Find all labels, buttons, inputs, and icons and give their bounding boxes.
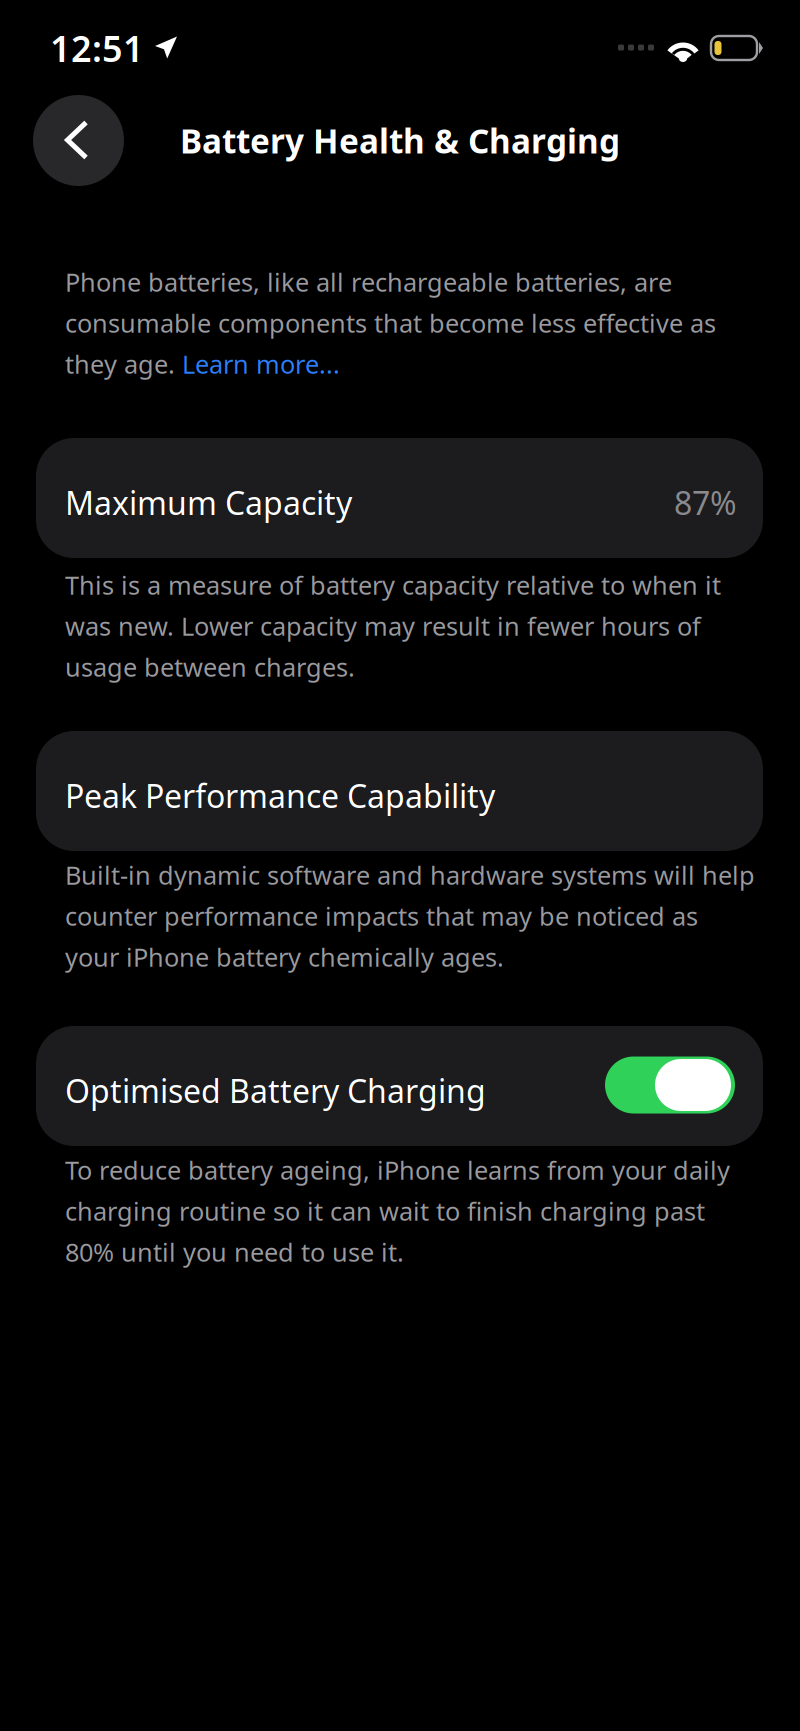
staticText: Peak Performance Capability	[65, 774, 495, 817]
staticText: Phone batteries, like all rechargeable b…	[65, 265, 672, 299]
staticText: Learn more...	[182, 347, 340, 381]
button[interactable]: Back	[33, 95, 124, 186]
staticText: 80% until you need to use it.	[65, 1235, 404, 1269]
staticText: To reduce battery ageing, iPhone learns …	[65, 1153, 730, 1187]
staticText: usage between charges.	[65, 650, 355, 684]
staticText: 87%	[674, 481, 737, 524]
staticText: Maximum Capacity	[65, 481, 352, 524]
button[interactable]: Learn more...	[182, 347, 340, 381]
staticText: Battery Health & Charging	[180, 118, 620, 163]
staticText: 12:51	[50, 24, 144, 72]
staticText: was new. Lower capacity may result in fe…	[65, 609, 701, 643]
staticText: This is a measure of battery capacity re…	[65, 568, 721, 602]
staticText: charging routine so it can wait to finis…	[65, 1194, 705, 1228]
staticText: they age.	[65, 347, 182, 381]
staticText: counter performance impacts that may be …	[65, 899, 698, 933]
button[interactable]: Optimised Battery Charging	[605, 1056, 737, 1124]
staticText: Optimised Battery Charging	[65, 1069, 486, 1112]
button[interactable]: Peak Performance Capability	[0, 731, 763, 851]
staticText: consumable components that become less e…	[65, 306, 716, 340]
staticText: your iPhone battery chemically ages.	[65, 940, 504, 974]
staticText: Built-in dynamic software and hardware s…	[65, 858, 755, 892]
